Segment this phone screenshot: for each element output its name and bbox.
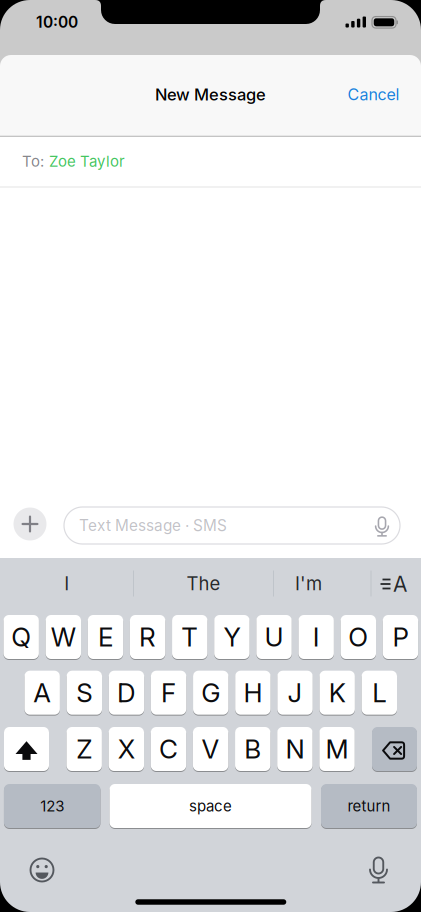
- staticText: V: [202, 733, 220, 765]
- button[interactable]: To:: [0, 137, 421, 186]
- staticText: A: [393, 571, 407, 597]
- staticText: R: [139, 621, 156, 653]
- button[interactable]: D: [109, 671, 144, 715]
- staticText: J: [287, 677, 302, 708]
- button[interactable]: J: [277, 671, 313, 715]
- button[interactable]: P: [383, 615, 418, 659]
- button[interactable]: [372, 727, 417, 771]
- staticText: D: [117, 677, 136, 708]
- staticText: Q: [11, 621, 31, 653]
- staticText: Z: [76, 733, 92, 765]
- staticText: I'm: [295, 572, 322, 595]
- staticText: F: [161, 677, 176, 708]
- staticText: space: [189, 797, 232, 815]
- button[interactable]: U: [256, 615, 292, 659]
- staticText: X: [118, 733, 135, 765]
- staticText: L: [372, 677, 386, 708]
- staticText: K: [329, 677, 346, 708]
- staticText: O: [348, 621, 368, 653]
- button[interactable]: G: [193, 671, 228, 715]
- button[interactable]: [356, 850, 400, 894]
- button[interactable]: I: [7, 560, 127, 606]
- staticText: U: [264, 621, 283, 653]
- button[interactable]: B: [235, 727, 270, 771]
- button[interactable]: Y: [214, 615, 250, 659]
- staticText: A: [33, 677, 51, 708]
- button[interactable]: C: [151, 727, 186, 771]
- button[interactable]: R: [130, 615, 165, 659]
- button[interactable]: I'm: [263, 560, 353, 606]
- button[interactable]: I: [298, 615, 334, 659]
- staticText: G: [201, 677, 220, 708]
- button[interactable]: V: [193, 727, 228, 771]
- button[interactable]: N: [277, 727, 313, 771]
- staticText: return: [347, 797, 390, 815]
- staticText: To:: [22, 152, 44, 170]
- staticText: P: [392, 621, 408, 653]
- button[interactable]: L: [362, 671, 397, 715]
- button[interactable]: K: [319, 671, 355, 715]
- button[interactable]: F: [151, 671, 186, 715]
- button[interactable]: Text Message · SMS: [64, 507, 400, 544]
- staticText: M: [325, 733, 348, 765]
- button[interactable]: Z: [66, 727, 102, 771]
- staticText: H: [243, 677, 262, 708]
- staticText: Text Message · SMS: [79, 516, 227, 535]
- staticText: New Message: [155, 84, 266, 104]
- button[interactable]: [20, 848, 64, 892]
- staticText: B: [244, 733, 261, 765]
- staticText: I: [64, 572, 69, 595]
- button[interactable]: O: [341, 615, 376, 659]
- button[interactable]: T: [172, 615, 207, 659]
- button[interactable]: Cancel: [347, 85, 399, 104]
- button[interactable]: X: [109, 727, 144, 771]
- button[interactable]: A: [371, 562, 415, 605]
- button[interactable]: A: [24, 671, 60, 715]
- staticText: W: [51, 621, 76, 653]
- button[interactable]: H: [235, 671, 271, 715]
- button[interactable]: 123: [4, 784, 100, 828]
- staticText: C: [159, 733, 178, 765]
- button[interactable]: W: [46, 615, 81, 659]
- button[interactable]: [4, 727, 49, 771]
- staticText: E: [98, 621, 113, 653]
- staticText: Y: [223, 621, 240, 653]
- button[interactable]: M: [319, 727, 355, 771]
- staticText: 10:00: [36, 13, 78, 31]
- button[interactable]: return: [321, 784, 417, 828]
- button[interactable]: [13, 507, 46, 540]
- button[interactable]: E: [88, 615, 123, 659]
- staticText: S: [76, 677, 92, 708]
- button[interactable]: S: [67, 671, 102, 715]
- staticText: The: [186, 572, 220, 595]
- staticText: Cancel: [347, 85, 399, 104]
- staticText: N: [285, 733, 304, 765]
- staticText: Zoe Taylor: [49, 152, 125, 170]
- staticText: 123: [40, 797, 64, 815]
- staticText: T: [181, 621, 198, 653]
- button[interactable]: space: [109, 784, 311, 828]
- button[interactable]: The: [138, 560, 268, 606]
- button[interactable]: Q: [3, 615, 39, 659]
- staticText: I: [313, 621, 320, 653]
